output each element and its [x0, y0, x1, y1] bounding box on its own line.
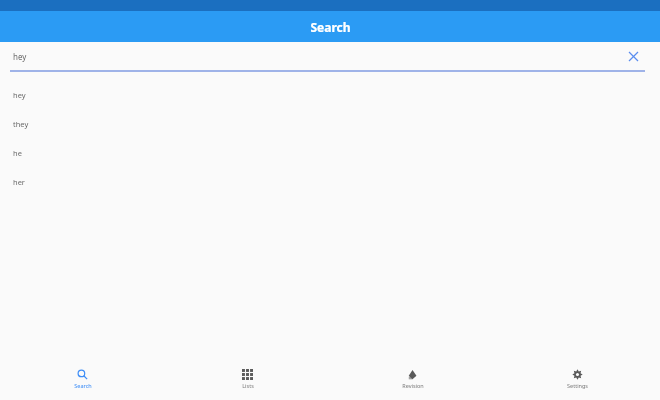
- staticText: he: [13, 148, 22, 158]
- button[interactable]: Settings: [495, 360, 660, 398]
- staticText: Search: [74, 382, 92, 389]
- staticText: her: [13, 177, 25, 187]
- button[interactable]: they: [0, 109, 660, 138]
- button[interactable]: her: [0, 167, 660, 196]
- button[interactable]: Lists: [165, 360, 330, 398]
- button[interactable]: Clear search: [624, 47, 642, 65]
- button[interactable]: Revision: [330, 360, 495, 398]
- staticText: Search: [310, 19, 351, 35]
- staticText: Lists: [242, 382, 254, 389]
- staticText: Settings: [567, 382, 588, 389]
- staticText: hey: [13, 51, 27, 62]
- staticText: Revision: [402, 382, 424, 389]
- button[interactable]: Search: [0, 360, 165, 398]
- staticText: they: [13, 119, 29, 129]
- staticText: hey: [13, 90, 26, 100]
- button[interactable]: hey: [0, 80, 660, 109]
